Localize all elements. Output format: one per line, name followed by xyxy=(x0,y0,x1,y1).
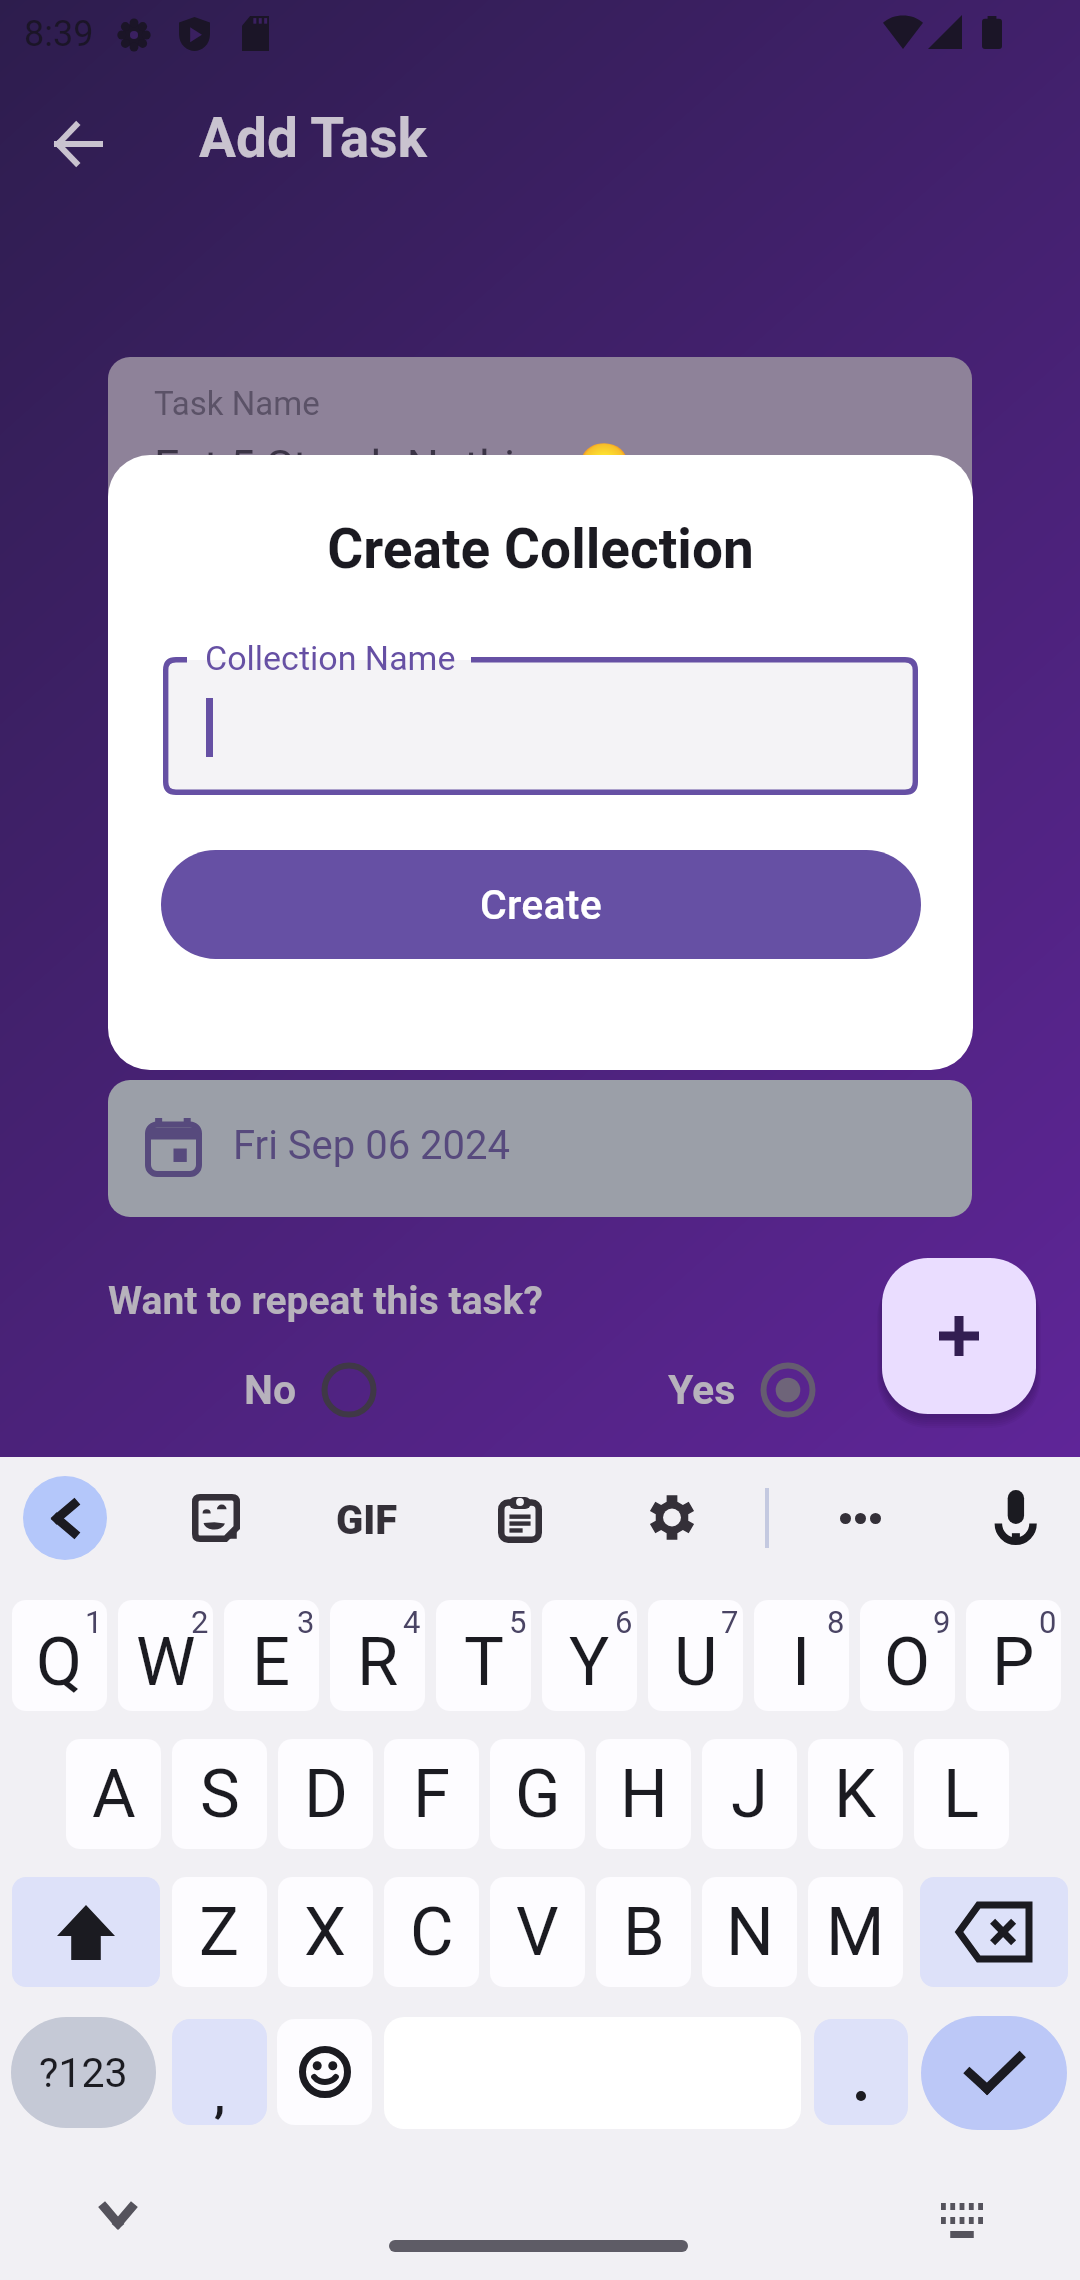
button[interactable]: Back xyxy=(23,1476,107,1560)
staticText: Fri Sep 06 2024 xyxy=(233,1122,510,1169)
button[interactable]: Settings xyxy=(649,1494,695,1541)
staticText: J xyxy=(731,1755,768,1834)
button[interactable]: X xyxy=(278,1877,373,1987)
button[interactable]: Task Name xyxy=(108,357,972,532)
button[interactable]: B xyxy=(596,1877,691,1987)
staticText: B xyxy=(623,1893,665,1972)
staticText: S xyxy=(200,1755,240,1834)
button[interactable]: Back xyxy=(18,84,138,204)
staticText: ?123 xyxy=(39,2049,128,2097)
button[interactable]: , xyxy=(172,2019,267,2125)
staticText: Create xyxy=(480,881,602,929)
staticText: Collection Name xyxy=(205,638,456,678)
button[interactable]: Voice input xyxy=(996,1490,1035,1544)
staticText: 1 xyxy=(85,1604,103,1640)
button[interactable]: Enter xyxy=(921,2016,1067,2130)
staticText: GIF xyxy=(336,1497,398,1544)
button[interactable]: L xyxy=(914,1739,1009,1849)
staticText: Yes xyxy=(668,1366,736,1414)
button[interactable]: A xyxy=(66,1739,161,1849)
button[interactable]: Shift xyxy=(12,1877,160,1987)
button[interactable]: Stickers xyxy=(192,1494,240,1542)
staticText: A xyxy=(92,1755,136,1834)
staticText: Q xyxy=(36,1623,83,1702)
staticText: 2 xyxy=(191,1604,209,1640)
button[interactable]: Hide keyboard xyxy=(88,2185,148,2245)
button[interactable]: Yes xyxy=(668,1362,816,1418)
staticText: 8:39 xyxy=(24,13,94,55)
button[interactable]: No xyxy=(244,1362,377,1418)
staticText: N xyxy=(726,1893,774,1972)
button[interactable]: Z xyxy=(172,1877,267,1987)
staticText: Add Task xyxy=(199,106,427,170)
staticText: 0 xyxy=(1039,1604,1057,1640)
button[interactable]: P xyxy=(966,1600,1061,1711)
button[interactable]: U xyxy=(648,1600,743,1711)
staticText: L xyxy=(943,1755,980,1834)
staticText: F xyxy=(413,1755,451,1834)
staticText: 4 xyxy=(403,1604,421,1640)
staticText: , xyxy=(214,2069,226,2123)
button[interactable]: V xyxy=(490,1877,585,1987)
staticText: 9 xyxy=(933,1604,951,1640)
button[interactable] xyxy=(814,2019,908,2125)
staticText: T xyxy=(464,1623,504,1702)
staticText: Y xyxy=(569,1623,610,1702)
staticText: 7 xyxy=(721,1604,739,1640)
staticText: V xyxy=(516,1893,559,1972)
button[interactable]: Clipboard xyxy=(498,1497,542,1543)
staticText: D xyxy=(304,1755,348,1834)
staticText: C xyxy=(410,1893,454,1972)
staticText: 8 xyxy=(827,1604,845,1640)
staticText: Z xyxy=(199,1893,240,1972)
staticText: W xyxy=(136,1623,196,1702)
button[interactable]: M xyxy=(808,1877,903,1987)
button[interactable]: Emoji xyxy=(277,2019,372,2125)
staticText: No xyxy=(244,1366,297,1414)
button[interactable]: E xyxy=(224,1600,319,1711)
button[interactable]: Q xyxy=(12,1600,107,1711)
button[interactable]: Fri Sep 06 2024 xyxy=(108,1080,972,1217)
staticText: Eat 5 Starch Nothing 🙂 xyxy=(154,440,633,493)
staticText: Task Name xyxy=(154,384,320,423)
staticText: E xyxy=(252,1623,291,1702)
staticText: 3 xyxy=(297,1604,315,1640)
button[interactable]: J xyxy=(702,1739,797,1849)
button[interactable]: More options xyxy=(840,1513,881,1524)
button[interactable]: D xyxy=(278,1739,373,1849)
staticText: 6 xyxy=(615,1604,633,1640)
button[interactable]: Y xyxy=(542,1600,637,1711)
staticText: M xyxy=(826,1893,885,1972)
button[interactable]: F xyxy=(384,1739,479,1849)
button[interactable]: O xyxy=(860,1600,955,1711)
staticText: G xyxy=(515,1755,561,1834)
button[interactable]: Change keyboard xyxy=(928,2189,996,2241)
button[interactable]: T xyxy=(436,1600,531,1711)
button[interactable]: Create xyxy=(161,850,921,959)
button[interactable]: ?123 xyxy=(11,2017,156,2128)
staticText: X xyxy=(304,1893,347,1972)
staticText: Want to repeat this task? xyxy=(108,1278,543,1324)
button[interactable]: I xyxy=(754,1600,849,1711)
staticText: P xyxy=(992,1623,1035,1702)
staticText: K xyxy=(834,1755,877,1834)
button[interactable]: G xyxy=(490,1739,585,1849)
staticText: I xyxy=(792,1623,811,1702)
button[interactable]: Backspace xyxy=(920,1877,1068,1987)
button[interactable]: S xyxy=(172,1739,267,1849)
staticText: Create Collection xyxy=(108,517,973,581)
button[interactable]: Add xyxy=(882,1258,1036,1414)
button[interactable]: K xyxy=(808,1739,903,1849)
button[interactable]: W xyxy=(118,1600,213,1711)
button[interactable]: R xyxy=(330,1600,425,1711)
staticText: H xyxy=(620,1755,668,1834)
staticText: R xyxy=(357,1623,399,1702)
button[interactable]: C xyxy=(384,1877,479,1987)
staticText: O xyxy=(884,1623,931,1702)
button[interactable]: H xyxy=(596,1739,691,1849)
staticText: U xyxy=(674,1623,718,1702)
button[interactable]: N xyxy=(702,1877,797,1987)
staticText: 5 xyxy=(509,1604,527,1640)
